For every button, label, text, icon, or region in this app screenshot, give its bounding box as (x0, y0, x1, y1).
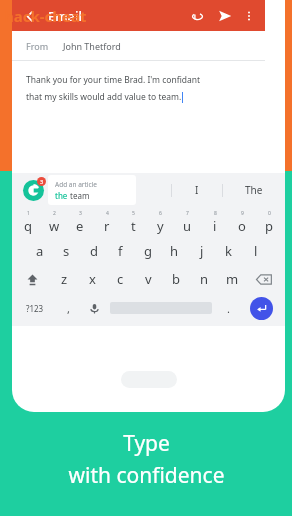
staticText: 7 (186, 210, 189, 217)
staticText: y (157, 217, 164, 235)
button[interactable]: Grammarly (20, 177, 46, 203)
button[interactable]: 0 (255, 207, 282, 237)
button[interactable]: c (106, 265, 134, 293)
staticText: 3 (40, 178, 44, 185)
button[interactable]: x (78, 265, 106, 293)
staticText: z (61, 270, 68, 288)
staticText: hack-cheat (4, 6, 87, 26)
button[interactable]: v (134, 265, 162, 293)
staticText: o (238, 217, 246, 235)
staticText: r (104, 217, 110, 235)
button[interactable]: h (161, 237, 188, 265)
staticText: c (117, 270, 124, 288)
staticText: 0 (268, 210, 271, 217)
button[interactable]: l (242, 237, 269, 265)
staticText: u (183, 217, 192, 235)
staticText: The (245, 183, 263, 197)
button[interactable]: 3 (67, 207, 93, 237)
staticText: h (170, 242, 179, 260)
button[interactable]: g (134, 237, 161, 265)
staticText: 5 (132, 210, 135, 217)
button[interactable]: , (55, 293, 81, 323)
staticText: 9 (241, 210, 244, 217)
staticText: j (200, 242, 204, 260)
staticText: 3 (79, 210, 82, 217)
button[interactable]: 1 (15, 207, 41, 237)
button[interactable]: Attach (185, 4, 209, 28)
staticText: Email (48, 7, 83, 25)
staticText: n (200, 270, 209, 288)
button[interactable]: 7 (174, 207, 201, 237)
button[interactable]: d (80, 237, 107, 265)
staticText: x (89, 270, 96, 288)
button[interactable]: j (188, 237, 215, 265)
button[interactable]: m (218, 265, 246, 293)
button[interactable]: b (162, 265, 190, 293)
staticText: f (118, 242, 123, 260)
staticText: Thank you for your time Brad. I'm confid… (26, 74, 201, 86)
button[interactable]: 8 (201, 207, 228, 237)
staticText: w (49, 217, 60, 235)
button[interactable]: Add an article (48, 175, 136, 205)
button[interactable]: 9 (228, 207, 255, 237)
button[interactable]: I (172, 173, 222, 207)
staticText: John Thetford (63, 40, 121, 52)
button[interactable]: 5 (120, 207, 147, 237)
staticText: i (213, 217, 217, 235)
staticText: q (24, 217, 32, 235)
button[interactable]: Home (121, 371, 177, 388)
button[interactable]: The (223, 173, 285, 207)
button[interactable]: 4 (93, 207, 120, 237)
staticText: l (254, 242, 258, 260)
staticText: d (90, 242, 98, 260)
staticText: Add an article (55, 180, 98, 189)
button[interactable]: Backspace (246, 265, 282, 293)
staticText: Type (123, 429, 170, 458)
button[interactable]: 6 (147, 207, 174, 237)
staticText: m (226, 270, 239, 288)
staticText: From (26, 40, 49, 52)
staticText: I (195, 183, 199, 197)
staticText: 2 (53, 210, 56, 217)
staticText: , (67, 301, 70, 316)
button[interactable]: . (215, 293, 241, 323)
staticText: 8 (214, 210, 217, 217)
staticText: v (145, 270, 152, 288)
staticText: 4 (106, 210, 109, 217)
staticText: 6 (159, 210, 162, 217)
button[interactable]: More options (239, 6, 259, 26)
staticText: with confidence (68, 461, 225, 490)
staticText: k (225, 242, 232, 260)
staticText: b (172, 270, 180, 288)
button[interactable]: Send (213, 4, 237, 28)
staticText: 1 (27, 210, 30, 217)
staticText: s (63, 242, 70, 260)
staticText: ?123 (26, 303, 44, 314)
button[interactable]: Enter (241, 293, 282, 323)
button[interactable]: z (50, 265, 78, 293)
button[interactable]: a (27, 237, 53, 265)
button[interactable]: f (107, 237, 134, 265)
button[interactable]: ?123 (15, 293, 55, 323)
button[interactable]: Shift (15, 265, 50, 293)
button[interactable]: s (53, 237, 80, 265)
button[interactable]: 2 (41, 207, 67, 237)
staticText: that my skills would add value to team. (26, 91, 182, 103)
button[interactable]: k (215, 237, 242, 265)
button[interactable]: Back (18, 4, 42, 28)
staticText: g (144, 242, 152, 260)
staticText: . (227, 301, 230, 316)
button[interactable]: n (190, 265, 218, 293)
staticText: t (131, 217, 136, 235)
staticText: team (70, 190, 90, 201)
staticText: e (76, 217, 84, 235)
staticText: a (36, 242, 44, 260)
button[interactable]: Voice input (81, 293, 107, 323)
staticText: p (265, 217, 273, 235)
staticText: the (55, 190, 70, 201)
